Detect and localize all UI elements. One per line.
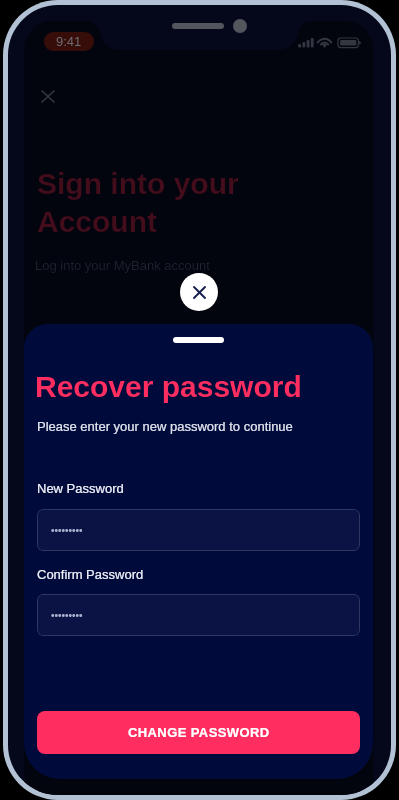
staticText: Log into your MyBank account (35, 258, 210, 273)
staticText: ••••••••• (51, 610, 83, 621)
staticText: 9:41 (56, 34, 82, 49)
staticText: New Password (37, 481, 124, 496)
staticText: ••••••••• (51, 525, 83, 536)
staticText: Please enter your new password to contin… (37, 419, 293, 434)
button[interactable]: Close (36, 84, 60, 108)
button[interactable]: ••••••••• (37, 509, 360, 551)
staticText: Confirm Password (37, 567, 144, 582)
staticText: Recover password (35, 370, 302, 404)
staticText: Sign into your Account (37, 167, 239, 239)
button[interactable]: ••••••••• (37, 594, 360, 636)
button[interactable]: CHANGE PASSWORD (37, 711, 360, 754)
staticText: CHANGE PASSWORD (128, 725, 270, 740)
button[interactable]: Dismiss (180, 273, 218, 311)
